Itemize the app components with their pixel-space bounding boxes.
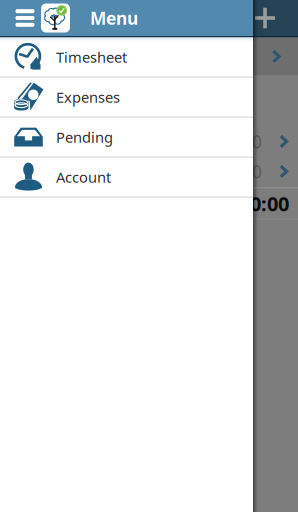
staticText: Timesheet — [56, 47, 127, 67]
button[interactable]: Pending — [0, 117, 253, 157]
staticText: Expenses — [56, 87, 120, 107]
staticText: 0 — [252, 130, 262, 153]
staticText: Account — [56, 167, 111, 187]
staticText: Menu — [90, 6, 138, 29]
button[interactable]: Close menu — [0, 0, 41, 36]
button[interactable]: Expenses — [0, 77, 253, 117]
staticText: 0 — [252, 160, 262, 183]
button[interactable]: Add — [243, 0, 287, 36]
button[interactable]: Account — [0, 157, 253, 197]
staticText: Pending — [56, 127, 113, 147]
button[interactable]: Timesheet — [0, 37, 253, 77]
staticText: 0:00 — [250, 190, 289, 217]
